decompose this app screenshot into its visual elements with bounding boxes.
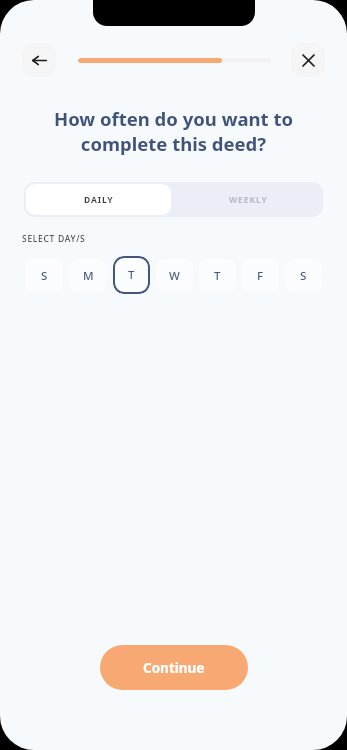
button[interactable]: T — [113, 256, 150, 294]
staticText: DAILY — [84, 194, 114, 206]
staticText: WEEKLY — [229, 194, 268, 206]
button[interactable]: M — [69, 259, 107, 292]
staticText: SELECT DAY/S — [22, 233, 86, 245]
button[interactable]: F — [242, 259, 279, 292]
button[interactable]: WEEKLY — [173, 182, 323, 217]
staticText: M — [83, 268, 94, 284]
button[interactable]: DAILY — [26, 184, 171, 215]
staticText: S — [41, 268, 48, 284]
button[interactable]: W — [156, 259, 193, 292]
staticText: T — [128, 267, 135, 283]
button[interactable]: S — [285, 259, 322, 292]
staticText: S — [300, 268, 307, 284]
button[interactable]: Back — [22, 43, 56, 77]
staticText: W — [169, 268, 180, 284]
staticText: Continue — [143, 659, 205, 677]
button[interactable]: Continue — [100, 645, 248, 690]
staticText: How often do you want to complete this d… — [20, 106, 327, 156]
button[interactable]: T — [199, 259, 236, 292]
staticText: F — [257, 268, 264, 284]
button[interactable]: Close — [291, 43, 325, 77]
staticText: T — [214, 268, 221, 284]
button[interactable]: S — [25, 259, 63, 292]
